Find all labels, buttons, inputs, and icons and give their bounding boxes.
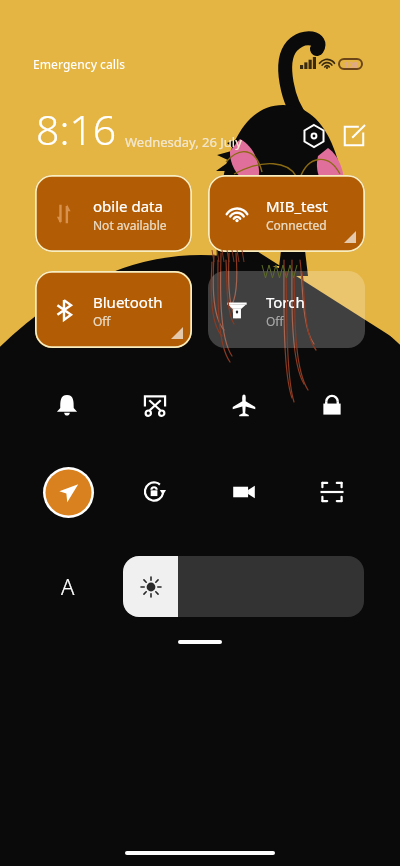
staticText: Off: [93, 313, 111, 329]
button[interactable]: Airplane mode: [222, 383, 266, 427]
button[interactable]: Brightness: [123, 556, 364, 617]
button[interactable]: Edit: [338, 120, 370, 152]
button[interactable]: Screen record: [222, 470, 266, 514]
button[interactable]: Auto brightness: [50, 570, 86, 602]
staticText: obile data: [93, 196, 163, 216]
button[interactable]: Screen cast: [133, 383, 177, 427]
staticText: Wednesday, 26 July: [125, 133, 242, 151]
staticText: Torch: [266, 292, 305, 312]
button[interactable]: Bluetooth: [35, 271, 192, 348]
staticText: MIB_test: [266, 196, 328, 216]
button[interactable]: Location: [43, 467, 94, 518]
staticText: Off: [266, 313, 284, 329]
button[interactable]: Auto rotate: [133, 470, 177, 514]
staticText: 100: [344, 59, 358, 69]
button[interactable]: obile data: [35, 175, 192, 252]
staticText: 8:16: [36, 101, 117, 157]
staticText: A: [61, 571, 75, 601]
button[interactable]: Settings: [298, 120, 330, 152]
staticText: Connected: [266, 217, 327, 233]
button[interactable]: MIB_test: [208, 175, 365, 252]
button[interactable]: Torch: [208, 271, 365, 348]
button[interactable]: Notifications: [45, 383, 89, 427]
staticText: Not available: [93, 217, 167, 233]
button[interactable]: Scan QR code: [310, 470, 354, 514]
staticText: Emergency calls only: [33, 56, 145, 72]
staticText: Bluetooth: [93, 292, 163, 312]
button[interactable]: Lock: [310, 383, 354, 427]
